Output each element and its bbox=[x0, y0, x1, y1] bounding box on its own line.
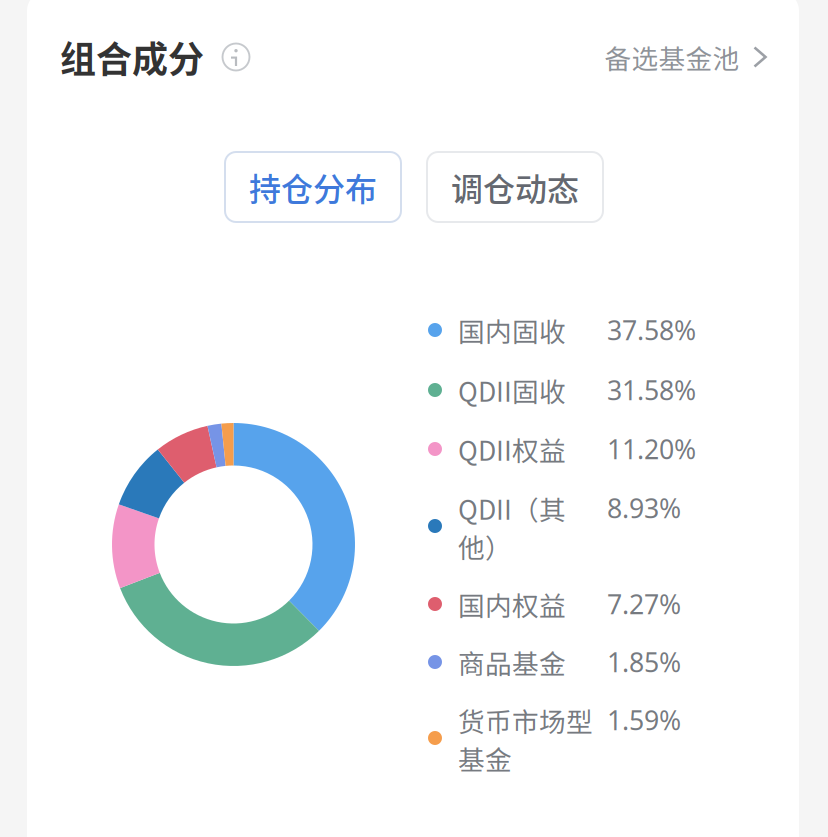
staticText: 他） bbox=[458, 527, 512, 565]
staticText: QDII（其 bbox=[458, 489, 566, 527]
staticText: 货币市场型 bbox=[458, 701, 593, 739]
button[interactable]: 组合成分说明 bbox=[216, 37, 256, 77]
staticText: 组合成分 bbox=[60, 31, 204, 83]
staticText: 调仓动态 bbox=[451, 164, 579, 210]
staticText: 11.20% bbox=[607, 431, 696, 467]
staticText: 基金 bbox=[458, 739, 512, 777]
staticText: 国内固收 bbox=[458, 311, 566, 349]
staticText: 持仓分布 bbox=[249, 164, 377, 210]
staticText: 1.85% bbox=[607, 644, 681, 680]
staticText: 1.59% bbox=[607, 702, 681, 738]
button[interactable]: 持仓分布 bbox=[225, 152, 401, 222]
staticText: 37.58% bbox=[607, 312, 696, 348]
button[interactable]: 调仓动态 bbox=[427, 152, 603, 222]
staticText: 国内权益 bbox=[458, 585, 566, 623]
staticText: 8.93% bbox=[607, 490, 681, 526]
button[interactable]: 备选基金池 bbox=[588, 26, 780, 88]
staticText: QDII权益 bbox=[458, 430, 566, 468]
staticText: 备选基金池 bbox=[604, 38, 739, 76]
staticText: 7.27% bbox=[607, 586, 681, 622]
staticText: 31.58% bbox=[607, 372, 696, 408]
staticText: 商品基金 bbox=[458, 643, 566, 681]
staticText: QDII固收 bbox=[458, 371, 566, 409]
